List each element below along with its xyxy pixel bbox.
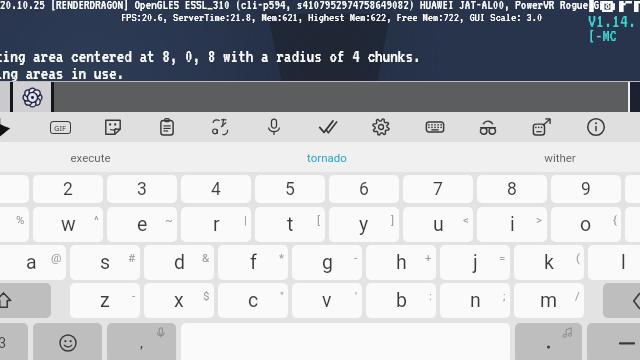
button[interactable]: 0 <box>625 175 640 203</box>
button[interactable]: k <box>514 245 584 280</box>
button[interactable]: v <box>292 283 362 318</box>
staticText: b <box>396 289 407 312</box>
staticText: 6 <box>359 179 369 200</box>
staticText: z <box>100 289 110 312</box>
staticText: * <box>279 251 284 264</box>
button[interactable]: Period <box>515 323 582 360</box>
button[interactable]: o <box>551 207 621 242</box>
button[interactable]: wither <box>490 142 630 172</box>
staticText: + <box>425 251 432 264</box>
button[interactable]: d <box>144 245 214 280</box>
staticText: king area centered at 8, 0, 8 with a rad… <box>0 47 421 66</box>
button[interactable]: 5 <box>255 175 325 203</box>
button[interactable]: GIF <box>43 112 77 142</box>
button[interactable]: h <box>366 245 436 280</box>
staticText: w <box>61 213 76 236</box>
staticText: [ <box>317 213 321 226</box>
button[interactable]: t <box>255 207 325 242</box>
button[interactable]: Comma <box>107 323 176 360</box>
button[interactable]: Voice input <box>257 112 291 142</box>
button[interactable]: 2 <box>33 175 103 203</box>
button[interactable]: l <box>588 245 640 280</box>
button[interactable]: u <box>403 207 473 242</box>
staticText: 8 <box>507 179 517 200</box>
button[interactable]: 9 <box>551 175 621 203</box>
button[interactable]: r <box>181 207 251 242</box>
staticText: ing areas in use. <box>0 64 125 83</box>
button[interactable]: m <box>514 283 584 318</box>
button[interactable]: Info <box>579 112 613 142</box>
button[interactable]: Emoji <box>33 323 102 360</box>
staticText: < <box>463 213 469 226</box>
staticText: e <box>137 213 148 236</box>
staticText: k <box>544 251 554 274</box>
staticText: " <box>280 289 284 302</box>
button[interactable]: 4 <box>181 175 251 203</box>
button[interactable]: Settings <box>364 112 398 142</box>
button[interactable]: 8 <box>477 175 547 203</box>
button[interactable]: q <box>0 207 29 242</box>
button[interactable]: c <box>218 283 288 318</box>
staticText: y <box>359 213 369 236</box>
staticText: wither <box>544 151 576 164</box>
button[interactable]: i <box>477 207 547 242</box>
staticText: # <box>128 251 136 264</box>
staticText: u <box>433 213 444 236</box>
staticText: j <box>473 251 478 274</box>
button[interactable]: x <box>144 283 214 318</box>
button[interactable]: Shift <box>0 283 51 318</box>
button[interactable]: e <box>107 207 177 242</box>
button[interactable]: 6 <box>329 175 399 203</box>
staticText: c <box>248 289 259 312</box>
button[interactable]: j <box>440 245 510 280</box>
staticText: o <box>580 213 592 236</box>
staticText: ^ <box>94 213 99 226</box>
staticText: ?123 <box>0 335 7 351</box>
button[interactable]: y <box>329 207 399 242</box>
button[interactable]: Backspace <box>603 283 640 318</box>
button[interactable]: tornado <box>257 142 397 172</box>
button[interactable]: b <box>366 283 436 318</box>
staticText: Torn <box>583 0 640 14</box>
button[interactable]: f <box>218 245 288 280</box>
button[interactable]: Stickers <box>96 112 130 142</box>
button[interactable]: Keyboard modes <box>418 112 452 142</box>
staticText: x <box>174 289 184 312</box>
staticText: = <box>499 251 506 264</box>
staticText: { <box>613 213 617 226</box>
staticText: 9 <box>581 179 591 200</box>
button[interactable]: execute <box>20 142 160 172</box>
staticText: v <box>322 289 332 312</box>
staticText: @ <box>51 251 62 264</box>
staticText: [-MC <box>588 27 617 45</box>
button[interactable]: 7 <box>403 175 473 203</box>
button[interactable]: Resize keyboard <box>525 112 559 142</box>
button[interactable]: n <box>440 283 510 318</box>
button[interactable]: Enter <box>587 323 640 360</box>
button[interactable]: z <box>70 283 140 318</box>
button[interactable]: Incognito <box>471 112 505 142</box>
button[interactable]: Editor <box>311 112 345 142</box>
staticText: d <box>174 251 185 274</box>
button[interactable]: ?123 <box>0 323 28 360</box>
staticText: 2 <box>63 179 73 200</box>
staticText: & <box>202 251 210 264</box>
button[interactable]: 3 <box>107 175 177 203</box>
button[interactable]: w <box>33 207 103 242</box>
staticText: f <box>250 251 257 274</box>
button[interactable]: g <box>292 245 362 280</box>
button[interactable]: Clipboard <box>150 112 184 142</box>
button[interactable]: SwiftKey menu <box>0 113 18 141</box>
staticText: n <box>470 289 481 312</box>
staticText: execute <box>70 151 111 164</box>
button[interactable]: s <box>70 245 140 280</box>
button[interactable]: a <box>0 245 66 280</box>
staticText: a <box>26 251 37 274</box>
staticText: ~ <box>165 213 173 226</box>
button[interactable]: Chat settings <box>13 82 51 112</box>
button[interactable]: Translate <box>203 112 237 142</box>
